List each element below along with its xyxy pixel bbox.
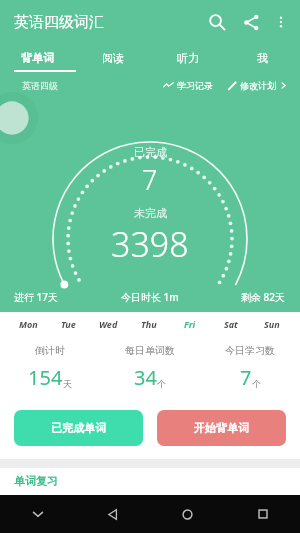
button[interactable]: 听力	[150, 44, 225, 72]
staticText: Fri	[184, 318, 196, 330]
button[interactable]: 我	[225, 44, 300, 72]
staticText: 单词复习	[14, 474, 58, 488]
button[interactable]: Home	[150, 495, 225, 533]
staticText: 背单词	[21, 51, 54, 65]
staticText: Thu	[141, 318, 157, 330]
staticText: 开始背单词	[194, 421, 249, 435]
button[interactable]: 背单词	[0, 44, 75, 72]
staticText: 阅读	[102, 51, 124, 65]
staticText: 天	[63, 378, 72, 389]
staticText: 已完成单词	[51, 421, 106, 435]
button[interactable]: Recent apps	[225, 495, 300, 533]
staticText: Sat	[224, 318, 238, 330]
staticText: 个	[157, 378, 166, 389]
staticText: 剩余 82天	[241, 290, 286, 304]
staticText: 已完成	[134, 145, 167, 159]
staticText: 英语四级	[22, 80, 58, 91]
staticText: 34	[134, 364, 157, 391]
staticText: 学习记录	[177, 80, 213, 91]
staticText: 每日单词数	[125, 344, 175, 357]
staticText: 英语四级词汇	[14, 13, 104, 32]
button[interactable]: 学习记录	[160, 80, 216, 91]
staticText: 3398	[111, 221, 189, 267]
button[interactable]: 已完成单词	[14, 410, 143, 446]
staticText: 未完成	[134, 206, 167, 220]
staticText: 个	[252, 378, 261, 389]
staticText: Sun	[264, 318, 280, 330]
staticText: Mon	[19, 318, 38, 330]
staticText: Wed	[99, 318, 118, 330]
staticText: 7	[142, 161, 158, 198]
button[interactable]: 每日单词数	[100, 336, 200, 391]
staticText: 我	[257, 51, 268, 65]
button[interactable]: 倒计时	[0, 336, 100, 391]
button[interactable]: Hide keyboard	[0, 495, 75, 533]
button[interactable]: Back	[75, 495, 150, 533]
button[interactable]: Search	[200, 5, 234, 39]
staticText: 154	[28, 364, 63, 391]
staticText: 听力	[177, 51, 199, 65]
button[interactable]: 阅读	[75, 44, 150, 72]
staticText: 进行 17天	[14, 290, 59, 304]
staticText: 7	[240, 364, 252, 391]
staticText: 今日时长 1m	[121, 290, 179, 304]
staticText: 倒计时	[35, 344, 65, 357]
button[interactable]: More options	[268, 9, 294, 35]
staticText: Tue	[61, 318, 76, 330]
staticText: 修改计划	[240, 80, 276, 91]
staticText: 今日学习数	[225, 344, 275, 357]
button[interactable]: 今日学习数	[200, 336, 300, 391]
button[interactable]: 修改计划	[224, 80, 290, 91]
button[interactable]: 开始背单词	[157, 410, 286, 446]
button[interactable]: Share	[234, 5, 268, 39]
